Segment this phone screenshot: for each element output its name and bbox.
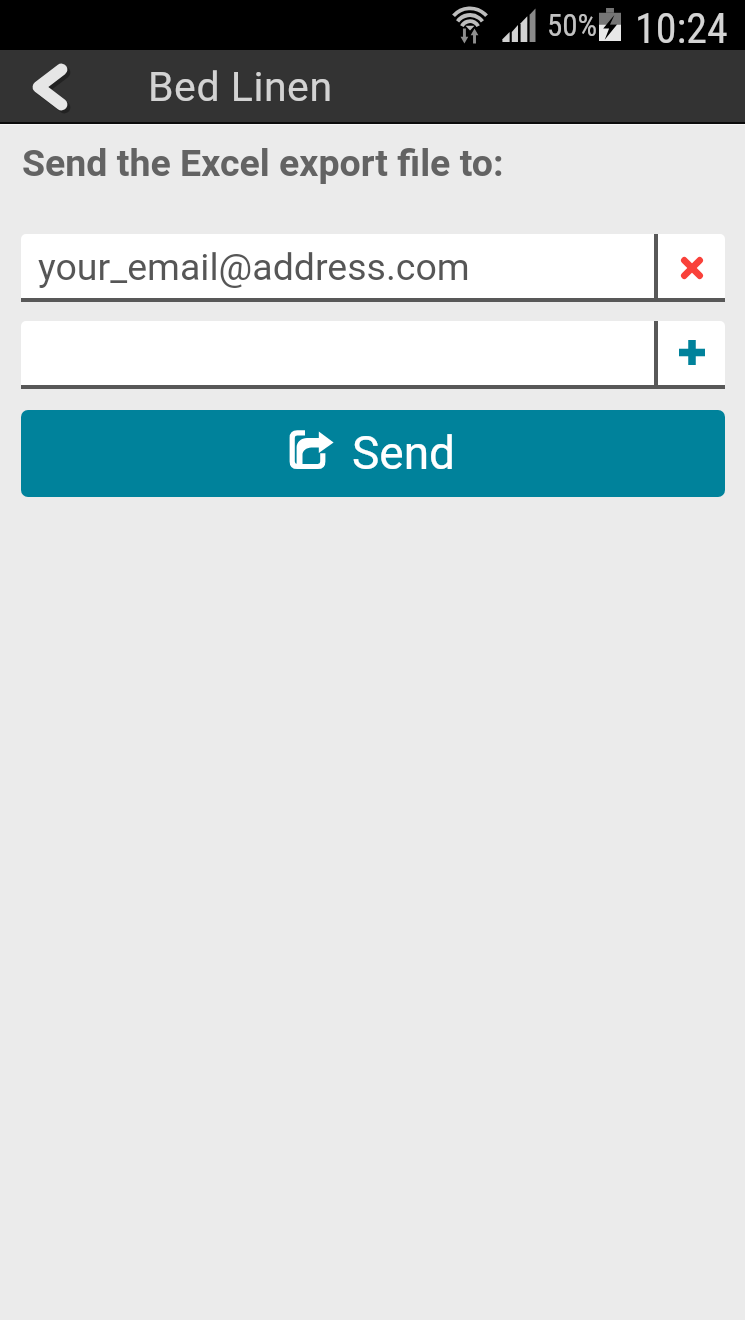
staticText: 50% (547, 7, 598, 43)
button[interactable]: Back (0, 50, 120, 124)
staticText: Bed Linen (148, 63, 333, 111)
staticText: your_email@address.com (38, 245, 470, 289)
button[interactable]: Add email address (658, 321, 725, 389)
staticText: Send the Excel export file to: (22, 141, 504, 185)
button[interactable]: your_email@address.com (21, 234, 654, 302)
button[interactable]: Remove email address (658, 234, 725, 302)
staticText: Send (352, 426, 456, 480)
button[interactable] (21, 321, 654, 389)
staticText: 10:24 (635, 4, 728, 53)
button[interactable]: Send (21, 410, 725, 497)
